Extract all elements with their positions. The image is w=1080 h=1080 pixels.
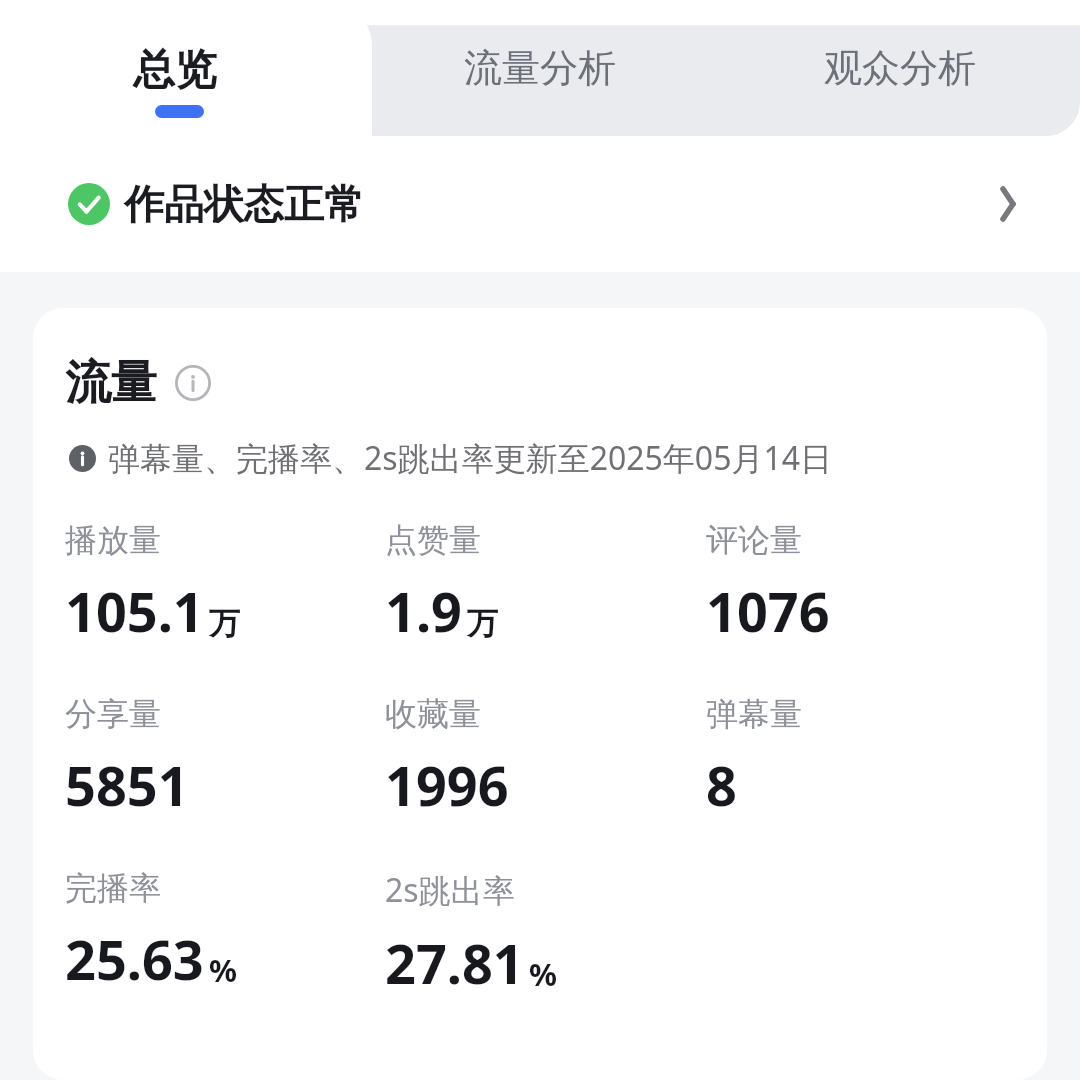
button[interactable]: 总览 — [0, 0, 372, 136]
button[interactable]: 完播率 — [65, 868, 385, 996]
staticText: 万 — [467, 604, 498, 643]
button[interactable]: 播放量 — [65, 520, 385, 648]
staticText: 弹幕量、完播率、2s跳出率更新至2025年05月14日 — [108, 436, 833, 480]
staticText: 1.9 — [385, 574, 462, 648]
staticText: 流量分析 — [464, 44, 616, 92]
staticText: 完播率 — [65, 868, 161, 908]
staticText: 评论量 — [706, 520, 802, 560]
staticText: 观众分析 — [824, 44, 976, 92]
staticText: 2s跳出率 — [385, 868, 515, 912]
button[interactable]: 收藏量 — [385, 694, 706, 822]
staticText: 总览 — [133, 44, 217, 97]
staticText: 流量 — [65, 354, 157, 412]
staticText: 点赞量 — [385, 520, 481, 560]
staticText: 1996 — [385, 748, 509, 822]
staticText: 105.1 — [65, 574, 204, 648]
staticText: 分享量 — [65, 694, 161, 734]
staticText: 收藏量 — [385, 694, 481, 734]
button[interactable]: 作品状态正常 — [0, 136, 1080, 272]
button[interactable]: 分享量 — [65, 694, 385, 822]
button[interactable]: 点赞量 — [385, 520, 706, 648]
staticText: 作品状态正常 — [124, 179, 364, 229]
staticText: 万 — [209, 604, 240, 643]
staticText: 25.63 — [65, 922, 204, 996]
staticText: 弹幕量 — [706, 694, 802, 734]
other: 查看详情 — [986, 182, 1030, 226]
staticText: % — [209, 949, 237, 991]
staticText: 5851 — [65, 748, 189, 822]
button[interactable]: 观众分析 — [720, 0, 1080, 136]
button[interactable]: 流量分析 — [360, 0, 720, 136]
staticText: 1076 — [706, 574, 830, 648]
button[interactable]: 2s跳出率 — [385, 868, 706, 1000]
button[interactable]: 弹幕量 — [706, 694, 1027, 822]
staticText: 播放量 — [65, 520, 161, 560]
staticText: 27.81 — [385, 926, 524, 1000]
button[interactable]: 流量说明 — [175, 365, 211, 401]
staticText: 8 — [706, 748, 737, 822]
staticText: % — [529, 953, 557, 995]
button[interactable]: 评论量 — [706, 520, 1027, 648]
